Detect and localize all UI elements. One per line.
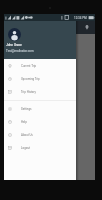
button[interactable]: About Us <box>4 128 76 141</box>
button[interactable]: Settings <box>4 102 76 115</box>
staticText: Settings <box>21 107 32 110</box>
staticText: Help <box>21 120 27 123</box>
button[interactable]: Help <box>4 115 76 128</box>
staticText: Test@mailnator.com <box>6 49 34 53</box>
staticText: John Snow <box>6 43 22 47</box>
staticText: About Us <box>21 133 33 136</box>
button[interactable]: Upcoming Trip <box>4 72 76 85</box>
button[interactable]: Location <box>83 24 90 31</box>
button[interactable]: Logout <box>4 141 76 154</box>
button[interactable]: Trip History <box>4 85 76 98</box>
staticText: Current Trip <box>21 64 37 67</box>
staticText: Trip History <box>21 90 36 93</box>
staticText: 12:34 PM <box>74 16 87 20</box>
staticText: Upcoming Trip <box>21 77 40 80</box>
button[interactable]: John Snow <box>4 21 76 59</box>
staticText: Logout <box>21 146 31 149</box>
button[interactable]: Current Trip <box>4 59 76 72</box>
